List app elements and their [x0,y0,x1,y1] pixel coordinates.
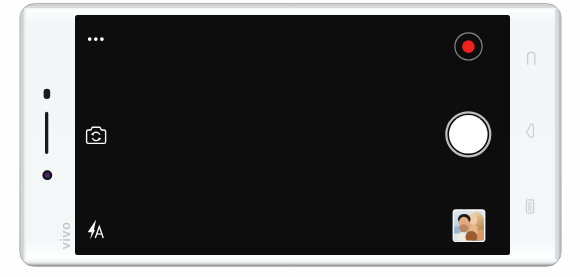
button[interactable]: Shutter [445,110,491,156]
button[interactable]: Back [524,48,540,70]
button[interactable]: Gallery [452,209,486,243]
staticText: vivo [57,221,74,249]
button[interactable]: More options [84,31,108,47]
button[interactable]: Switch camera [84,125,108,145]
button[interactable]: Record video [455,32,482,59]
button[interactable]: Home [523,120,539,142]
button[interactable]: Flash auto [85,218,107,240]
button[interactable]: Recent apps [524,196,540,218]
